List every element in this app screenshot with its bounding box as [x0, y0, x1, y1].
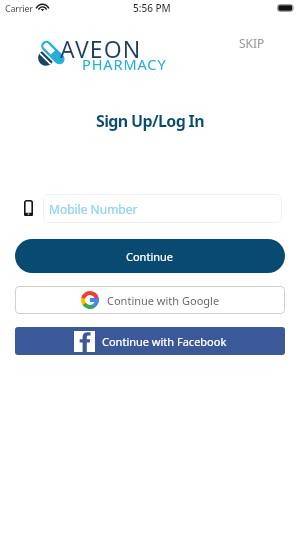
staticText: Continue [126, 249, 174, 264]
staticText: AVEON [60, 33, 142, 64]
button[interactable]: Continue with Google [15, 286, 285, 314]
button[interactable]: SKIP [231, 29, 273, 57]
staticText: Mobile Number [49, 201, 138, 217]
button[interactable]: Continue with Facebook [15, 327, 285, 355]
staticText: PHARMACY [82, 54, 167, 74]
staticText: Carrier [5, 2, 33, 14]
staticText: 5:56 PM [133, 1, 171, 15]
staticText: SKIP [239, 35, 265, 51]
staticText: Continue with Google [107, 293, 220, 308]
staticText: Sign Up/Log In [0, 110, 300, 132]
button[interactable]: Mobile Number [43, 194, 282, 223]
staticText: Continue with Facebook [102, 334, 227, 349]
button[interactable]: Continue [15, 239, 285, 273]
